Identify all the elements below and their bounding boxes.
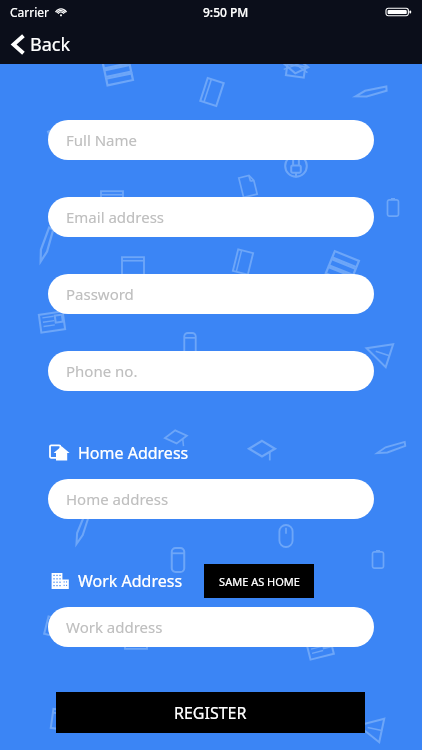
button[interactable]: Password bbox=[48, 274, 374, 314]
staticText: Phone no. bbox=[66, 361, 138, 381]
staticText: Carrier bbox=[10, 4, 50, 20]
staticText: SAME AS HOME bbox=[219, 574, 300, 589]
button[interactable]: Home address bbox=[48, 479, 374, 519]
staticText: Full Name bbox=[66, 130, 137, 150]
button[interactable]: Full Name bbox=[48, 120, 374, 160]
staticText: Password bbox=[66, 284, 134, 304]
staticText: REGISTER bbox=[174, 702, 247, 724]
staticText: Back bbox=[30, 32, 71, 57]
button[interactable]: Phone no. bbox=[48, 351, 374, 391]
staticText: Work Address bbox=[78, 570, 183, 592]
staticText: Home address bbox=[66, 489, 169, 509]
button[interactable]: REGISTER bbox=[56, 692, 365, 733]
staticText: 9:50 PM bbox=[203, 4, 249, 20]
staticText: Email address bbox=[66, 207, 165, 227]
button[interactable]: SAME AS HOME bbox=[204, 564, 314, 598]
button[interactable]: Back bbox=[0, 28, 83, 61]
staticText: Work address bbox=[66, 617, 163, 637]
staticText: Home Address bbox=[78, 442, 189, 464]
button[interactable]: Email address bbox=[48, 197, 374, 237]
button[interactable]: Work address bbox=[48, 607, 374, 647]
